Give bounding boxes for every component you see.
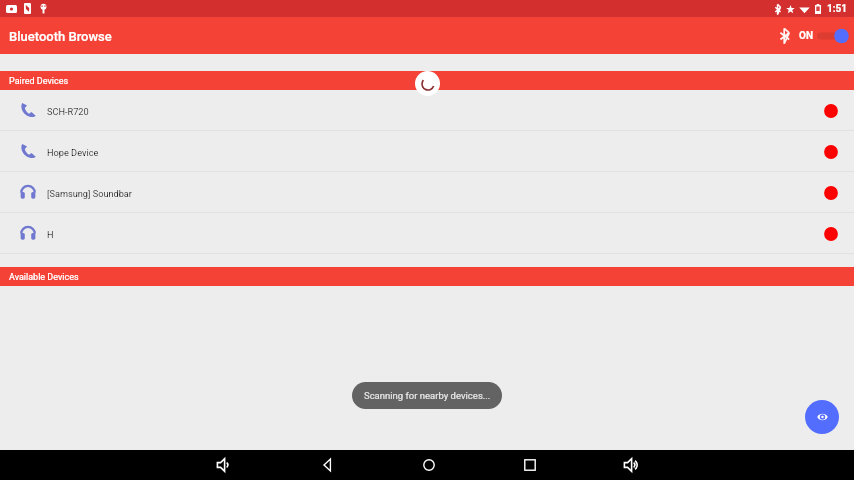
staticText: Hope Device	[47, 147, 99, 158]
button[interactable]: Volume up	[622, 455, 642, 475]
button[interactable]: Home	[419, 455, 439, 475]
button[interactable]: Recent apps	[520, 455, 540, 475]
button[interactable]: Bluetooth toggle	[815, 26, 849, 46]
staticText: ON	[799, 30, 813, 42]
staticText: 1:51	[827, 3, 848, 15]
button[interactable]: Volume down	[215, 455, 235, 475]
button[interactable]: Hope Device	[0, 131, 854, 171]
button[interactable]: [Samsung] Soundbar	[0, 172, 854, 212]
staticText: H	[47, 229, 54, 240]
staticText: SCH-R720	[47, 106, 89, 117]
staticText: [Samsung] Soundbar	[47, 188, 132, 199]
button[interactable]: H	[0, 213, 854, 253]
staticText: Bluetooth Browse	[9, 29, 112, 44]
button[interactable]: SCH-R720	[0, 90, 854, 130]
staticText: Available Devices	[9, 272, 79, 283]
staticText: Paired Devices	[9, 76, 69, 87]
button[interactable]: Back	[318, 455, 338, 475]
staticText: Scanning for nearby devices...	[364, 390, 491, 401]
button[interactable]: Make discoverable	[805, 400, 839, 434]
